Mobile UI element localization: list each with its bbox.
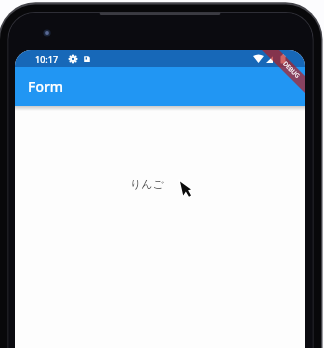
staticText: 10:17 bbox=[35, 53, 59, 65]
other: Mobile signal bbox=[266, 54, 273, 63]
button[interactable]: Settings bbox=[69, 55, 77, 63]
button[interactable]: Form bbox=[15, 67, 305, 106]
staticText: DEBUG bbox=[281, 60, 302, 80]
staticText: りんご bbox=[130, 177, 164, 191]
other: Battery bbox=[280, 54, 286, 64]
staticText: Form bbox=[28, 77, 64, 96]
button[interactable]: りんご bbox=[124, 173, 170, 195]
other: Storage notification bbox=[83, 55, 91, 63]
other: Wi-Fi bbox=[253, 54, 264, 63]
